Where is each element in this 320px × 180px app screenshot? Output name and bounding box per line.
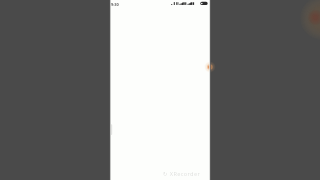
staticText: ↻ XRecorder: [163, 170, 201, 178]
button[interactable]: Back: [110, 124, 113, 136]
staticText: 9:30: [111, 2, 119, 7]
button[interactable]: Profile: [206, 60, 211, 74]
